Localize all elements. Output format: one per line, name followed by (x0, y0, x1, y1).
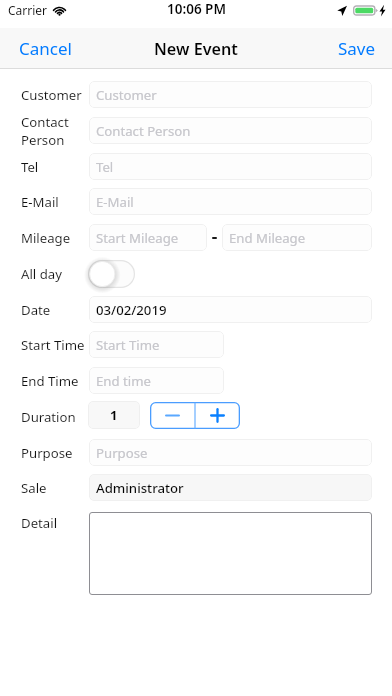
staticText: Purpose (21, 444, 73, 462)
staticText: Mileage (21, 229, 71, 247)
button[interactable] (89, 512, 372, 595)
button[interactable]: 1 (88, 401, 140, 429)
staticText: Customer (96, 86, 157, 104)
staticText: Sale (21, 479, 47, 497)
button[interactable]: Contact Person (89, 117, 372, 144)
staticText: Start Mileage (96, 229, 179, 247)
staticText: End Time (21, 372, 79, 390)
staticText: Start Time (96, 336, 160, 354)
staticText: Administrator (96, 479, 184, 497)
staticText: Customer (21, 86, 82, 104)
staticText: Carrier (8, 2, 48, 18)
staticText: Contact (21, 113, 69, 131)
button[interactable]: End Mileage (222, 224, 372, 251)
button[interactable]: All day toggle (88, 260, 135, 288)
button[interactable]: E-Mail (89, 188, 372, 215)
staticText: 03/02/2019 (96, 301, 167, 319)
button[interactable]: Decrease (150, 402, 195, 429)
staticText: New Event (154, 38, 238, 60)
button[interactable]: End time (89, 367, 224, 394)
staticText: Purpose (96, 444, 148, 462)
button[interactable]: Increase (195, 402, 240, 429)
staticText: Person (21, 131, 65, 149)
staticText: Tel (21, 158, 39, 176)
staticText: 1 (110, 406, 118, 424)
staticText: Date (21, 301, 51, 319)
button[interactable]: Purpose (89, 439, 372, 466)
button[interactable]: Cancel (0, 28, 88, 69)
staticText: Duration (21, 408, 76, 426)
button[interactable]: 03/02/2019 (89, 296, 372, 323)
button[interactable]: Start Mileage (89, 224, 207, 251)
button[interactable]: Tel (89, 153, 372, 180)
staticText: All day (21, 265, 62, 283)
staticText: E-Mail (21, 193, 59, 211)
staticText: Detail (21, 514, 58, 532)
staticText: E-Mail (96, 193, 134, 211)
staticText: Tel (96, 158, 114, 176)
staticText: 10:06 PM (167, 0, 226, 18)
staticText: Contact Person (96, 122, 191, 140)
button[interactable]: Customer (89, 81, 372, 108)
staticText: Start Time (21, 336, 85, 354)
staticText: End time (96, 372, 151, 390)
button[interactable]: Administrator (89, 474, 372, 501)
button[interactable]: Save (322, 28, 392, 69)
button[interactable]: Start Time (89, 331, 224, 358)
staticText: End Mileage (229, 229, 306, 247)
